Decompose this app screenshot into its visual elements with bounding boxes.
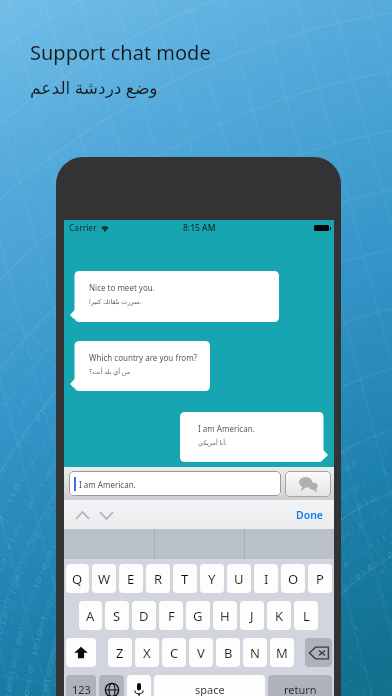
button[interactable]: X — [135, 638, 159, 667]
button[interactable]: P — [308, 564, 332, 593]
staticText: من أي بلد أنت؟ — [89, 367, 131, 376]
button[interactable]: Backspace — [305, 638, 332, 667]
button[interactable]: A — [79, 601, 102, 630]
staticText: M — [276, 644, 288, 662]
staticText: H — [220, 607, 230, 625]
button[interactable]: Q — [66, 564, 89, 593]
staticText: Z — [116, 644, 124, 662]
staticText: سررت بلقائك كثيرا. — [89, 297, 142, 306]
button[interactable]: B — [216, 638, 240, 667]
staticText: P — [316, 570, 324, 588]
button[interactable]: T — [173, 564, 197, 593]
staticText: S — [113, 607, 121, 625]
staticText: E — [127, 570, 135, 588]
button[interactable]: U — [227, 564, 251, 593]
staticText: Nice to meet you. — [89, 282, 155, 293]
staticText: D — [139, 607, 149, 625]
button[interactable]: M — [270, 638, 294, 667]
button[interactable]: L — [294, 601, 318, 630]
staticText: I am American. — [198, 423, 255, 434]
staticText: N — [250, 644, 260, 662]
button[interactable]: S — [105, 601, 129, 630]
button[interactable]: space — [154, 675, 265, 696]
staticText: O — [288, 570, 299, 588]
staticText: 123 — [72, 682, 91, 696]
staticText: W — [98, 570, 111, 588]
staticText: C — [170, 644, 179, 662]
button[interactable]: Next field — [97, 504, 116, 526]
staticText: Support chat mode — [30, 39, 211, 66]
staticText: X — [143, 644, 151, 662]
staticText: return — [284, 682, 317, 696]
staticText: A — [86, 607, 95, 625]
button[interactable]: R — [146, 564, 170, 593]
button[interactable]: Done — [293, 503, 327, 527]
button[interactable]: Z — [108, 638, 132, 667]
staticText: R — [154, 570, 163, 588]
button[interactable]: F — [159, 601, 183, 630]
button[interactable]: D — [132, 601, 156, 630]
staticText: أنا أمريكي. — [198, 438, 227, 447]
staticText: Carrier — [69, 222, 97, 234]
button[interactable]: Change language — [99, 675, 124, 696]
staticText: L — [303, 607, 310, 625]
button[interactable]: return — [268, 675, 332, 696]
button[interactable]: I am American. — [69, 471, 281, 496]
button[interactable]: C — [162, 638, 186, 667]
staticText: Q — [72, 570, 83, 588]
button[interactable]: Shift — [66, 638, 96, 667]
staticText: Which country are you from? — [89, 352, 198, 363]
staticText: U — [234, 570, 244, 588]
staticText: Y — [208, 570, 216, 588]
staticText: V — [197, 644, 205, 662]
staticText: F — [168, 607, 175, 625]
button[interactable]: Y — [200, 564, 224, 593]
button[interactable]: Previous field — [73, 504, 92, 526]
staticText: T — [181, 570, 189, 588]
button[interactable]: G — [186, 601, 210, 630]
staticText: G — [193, 607, 203, 625]
staticText: I — [264, 570, 269, 588]
button[interactable]: V — [189, 638, 213, 667]
staticText: 8:15 AM — [183, 222, 216, 234]
staticText: Done — [296, 508, 324, 522]
button[interactable]: I — [254, 564, 278, 593]
button[interactable]: K — [267, 601, 291, 630]
staticText: I am American. — [79, 479, 136, 490]
button[interactable]: Dictation — [127, 675, 151, 696]
button[interactable]: E — [119, 564, 143, 593]
staticText: K — [275, 607, 284, 625]
button[interactable]: J — [240, 601, 264, 630]
staticText: B — [224, 644, 233, 662]
button[interactable]: 123 — [66, 675, 96, 696]
button[interactable]: N — [243, 638, 267, 667]
button[interactable]: W — [92, 564, 116, 593]
button[interactable]: Chat — [285, 471, 331, 497]
button[interactable]: O — [281, 564, 305, 593]
staticText: J — [250, 607, 254, 625]
button[interactable]: H — [213, 601, 237, 630]
staticText: وضع دردشة الدعم — [30, 76, 158, 99]
staticText: space — [195, 682, 225, 696]
